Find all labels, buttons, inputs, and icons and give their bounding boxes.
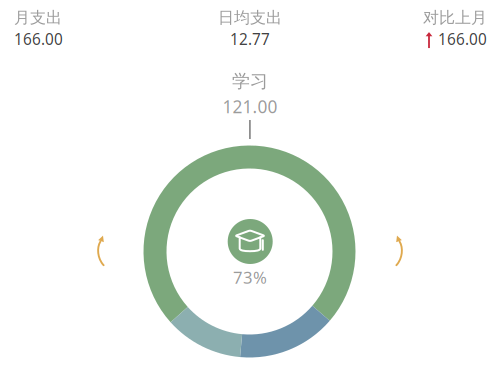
staticText: 12.77: [230, 29, 270, 50]
staticText: 121.00: [222, 95, 277, 118]
staticText: 日均支出: [218, 7, 282, 28]
button[interactable]: Next category: [0, 0, 500, 369]
staticText: 73%: [233, 266, 267, 289]
button[interactable]: 对比上月: [327, 7, 487, 49]
staticText: 166.00: [438, 29, 487, 50]
staticText: 166.00: [14, 29, 63, 50]
staticText: 学习: [232, 70, 268, 93]
button[interactable]: Previous category: [0, 0, 500, 369]
staticText: 对比上月: [423, 7, 487, 28]
button[interactable]: 日均支出: [180, 7, 320, 49]
staticText: 月支出: [14, 7, 62, 28]
button[interactable]: 月支出: [14, 7, 134, 49]
